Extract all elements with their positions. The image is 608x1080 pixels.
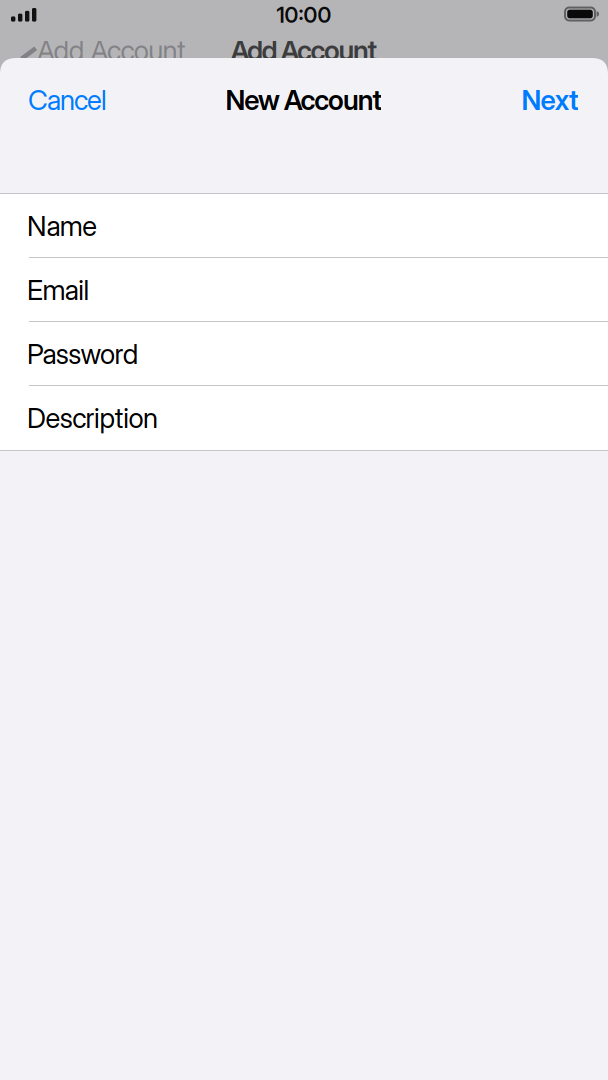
- button[interactable]: Email: [0, 258, 608, 322]
- button[interactable]: Name: [0, 194, 608, 258]
- staticText: Password: [27, 337, 139, 371]
- button[interactable]: Next: [521, 83, 579, 117]
- staticText: New Account: [225, 83, 382, 117]
- staticText: Name: [27, 209, 97, 243]
- staticText: Next: [521, 83, 579, 117]
- button[interactable]: Password: [0, 322, 608, 386]
- staticText: Add Account: [37, 34, 186, 67]
- staticText: 10:00: [276, 2, 331, 28]
- staticText: Add Account: [230, 34, 377, 67]
- button[interactable]: Cancel: [28, 83, 107, 117]
- button[interactable]: Description: [0, 386, 608, 450]
- staticText: Description: [27, 401, 158, 435]
- staticText: Email: [27, 273, 90, 307]
- staticText: Cancel: [28, 83, 107, 117]
